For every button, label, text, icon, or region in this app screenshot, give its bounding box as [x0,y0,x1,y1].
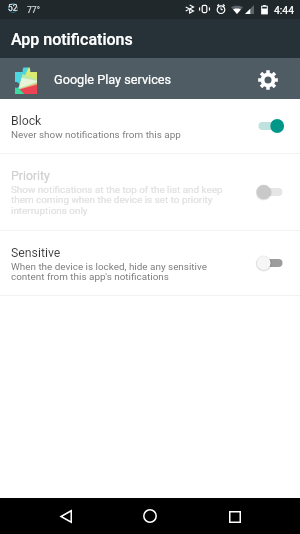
staticText: Never show notifications from this app [11,129,181,141]
staticText: Sensitive [11,246,61,260]
button[interactable]: Toggle [255,115,289,137]
staticText: 77° [27,5,40,15]
button[interactable]: Toggle [255,181,289,203]
button[interactable]: Recent apps [207,498,263,534]
staticText: Show notifications at the top of the lis… [11,184,231,217]
button[interactable]: Priority [0,154,300,230]
button[interactable]: Block [0,99,300,153]
staticText: Priority [11,169,50,183]
staticText: Google Play services [54,72,172,87]
button[interactable]: Back [38,498,94,534]
staticText: 52 [8,3,18,13]
button[interactable]: Sensitive [0,231,300,295]
staticText: App notifications [11,30,133,49]
staticText: When the device is locked, hide any sens… [11,261,231,283]
button[interactable]: Toggle [255,252,289,274]
staticText: Block [11,114,42,128]
button[interactable]: Home [122,498,178,534]
staticText: 4:44 [274,4,295,16]
button[interactable]: App settings [253,64,283,94]
